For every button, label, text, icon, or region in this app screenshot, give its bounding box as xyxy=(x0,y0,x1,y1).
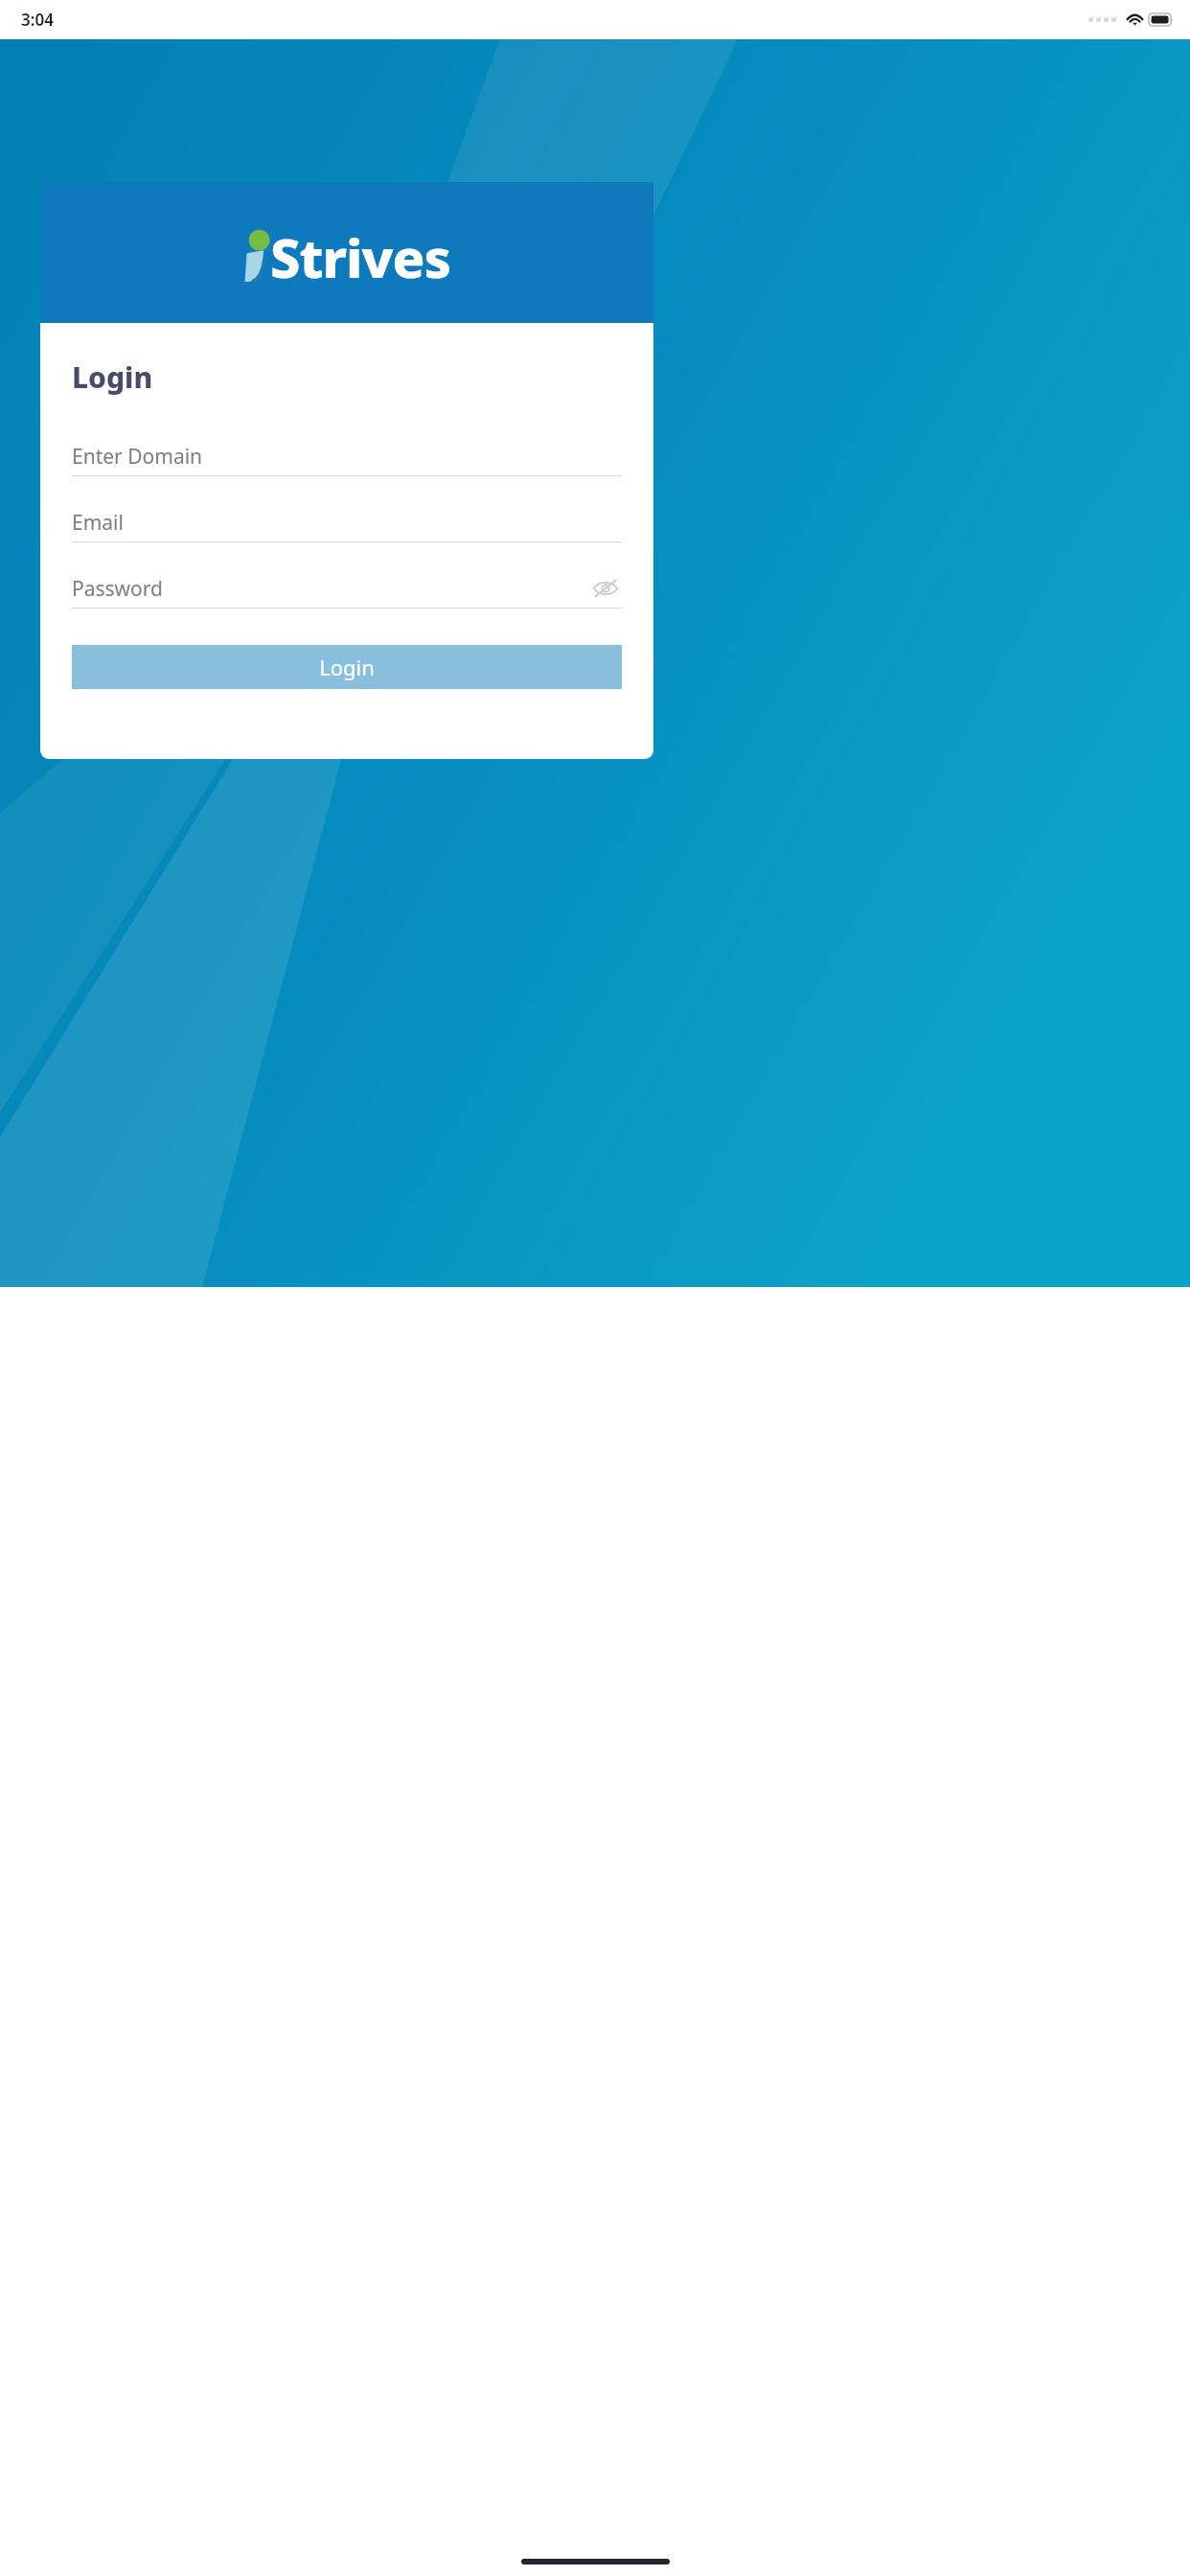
staticText: Enter Domain xyxy=(72,443,203,471)
button[interactable]: Enter Domain xyxy=(72,437,622,476)
button[interactable]: Password xyxy=(72,569,622,609)
staticText: 3:04 xyxy=(21,9,54,31)
button[interactable]: Email xyxy=(72,503,622,542)
staticText: Password xyxy=(72,575,163,603)
staticText: Strives xyxy=(270,220,450,293)
button[interactable]: Login xyxy=(72,645,622,689)
staticText: Email xyxy=(72,509,124,537)
button[interactable]: Show password xyxy=(589,572,622,605)
staticText: Login xyxy=(72,357,153,397)
staticText: Login xyxy=(319,653,375,681)
